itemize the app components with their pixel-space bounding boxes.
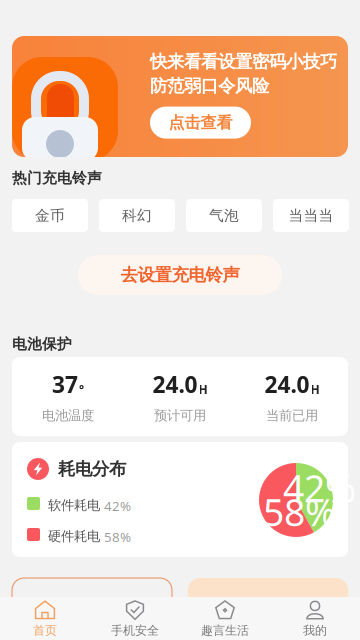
staticText: 37	[52, 369, 78, 399]
staticText: 24.0	[152, 369, 197, 399]
staticText: 24.0	[264, 369, 309, 399]
staticText: 42%	[104, 497, 131, 515]
button[interactable]: 趣言生活	[180, 597, 270, 640]
staticText: 当前已用	[266, 407, 318, 424]
staticText: 首页	[33, 623, 57, 638]
staticText: 软件耗电	[48, 497, 100, 513]
button[interactable]: 手机安全	[90, 597, 180, 640]
staticText: 58%	[104, 528, 131, 546]
staticText: 热门充电铃声	[12, 169, 102, 187]
staticText: 我的	[303, 623, 327, 638]
staticText: 预计可用	[154, 407, 206, 424]
staticText: 防范弱口令风险	[150, 75, 269, 97]
staticText: 点击查看	[168, 113, 232, 132]
staticText: 电池温度	[42, 407, 94, 424]
button[interactable]: 快来看看设置密码小技巧	[12, 36, 348, 157]
staticText: 去设置充电铃声	[120, 264, 239, 286]
staticText: H	[198, 381, 207, 397]
button[interactable]: 金币	[12, 199, 88, 232]
staticText: 58%	[263, 487, 336, 537]
staticText: 科幻	[122, 206, 152, 224]
staticText: 42%	[283, 463, 356, 513]
button[interactable]: 去设置充电铃声	[78, 255, 282, 295]
button[interactable]: 首页	[0, 597, 90, 640]
staticText: 趣言生活	[201, 623, 249, 638]
staticText: 快来看看设置密码小技巧	[150, 51, 337, 72]
staticText: 气泡	[209, 206, 239, 224]
button[interactable]: 我的	[270, 597, 360, 640]
staticText: 硬件耗电	[48, 528, 100, 544]
staticText: H	[310, 381, 319, 397]
staticText: 当当当	[288, 206, 333, 224]
staticText: 金币	[35, 206, 65, 224]
staticText: °	[79, 381, 84, 397]
button[interactable]: 气泡	[186, 199, 262, 232]
staticText: 耗电分布	[58, 458, 126, 480]
staticText: 电池保护	[12, 335, 72, 353]
button[interactable]: 当当当	[273, 199, 349, 232]
button[interactable]: 科幻	[99, 199, 175, 232]
staticText: 手机安全	[111, 623, 159, 638]
